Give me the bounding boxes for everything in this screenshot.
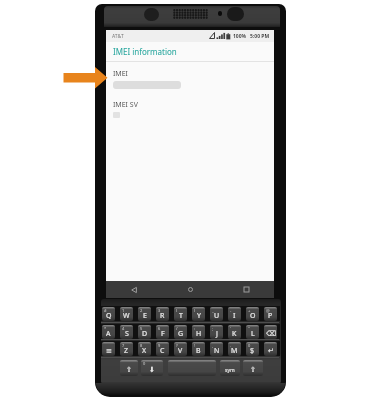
staticText: /	[176, 326, 178, 331]
staticText: IMEI information	[113, 46, 177, 57]
button[interactable]: ⌫	[264, 325, 277, 339]
staticText: 100%	[233, 33, 247, 40]
button[interactable]: Q	[102, 307, 115, 321]
staticText: 8	[140, 343, 143, 348]
button[interactable]: D	[138, 325, 151, 339]
button[interactable]: S	[120, 325, 133, 339]
staticText: @	[266, 308, 270, 313]
staticText: "	[248, 326, 250, 331]
staticText: Y	[197, 311, 201, 321]
staticText: ↵	[268, 347, 274, 355]
staticText: #	[104, 308, 107, 313]
staticText: ;	[212, 326, 214, 331]
staticText: 9	[158, 343, 161, 348]
staticText: +	[248, 308, 251, 313]
staticText: K	[232, 329, 237, 339]
button[interactable]: ⬇	[141, 360, 163, 376]
button[interactable]: J	[210, 325, 223, 339]
button[interactable]: IMEI SV	[106, 97, 274, 123]
button[interactable]: IMEI information	[106, 42, 274, 61]
staticText: 2	[140, 308, 143, 313]
button[interactable]: $	[246, 342, 259, 356]
staticText: G	[178, 329, 184, 339]
button[interactable]: W	[120, 307, 133, 321]
button[interactable]: P	[264, 307, 277, 321]
staticText: F	[161, 329, 165, 339]
staticText: ⇧	[126, 366, 132, 374]
staticText: D	[142, 329, 148, 339]
staticText: U	[214, 311, 220, 321]
staticText: IMEI SV	[113, 100, 138, 110]
button[interactable]: I	[228, 307, 241, 321]
staticText: ,	[212, 343, 214, 348]
button[interactable]: G	[174, 325, 187, 339]
staticText: IMEI	[113, 69, 128, 79]
staticText: 5	[140, 326, 143, 331]
staticText: H	[196, 329, 202, 339]
button[interactable]: Y	[192, 307, 205, 321]
button[interactable]: X	[138, 342, 151, 356]
staticText: E	[143, 311, 147, 321]
button[interactable]: sym	[220, 360, 240, 376]
staticText: ≡	[106, 347, 112, 355]
staticText: '	[230, 326, 231, 331]
staticText: 0	[248, 343, 251, 348]
staticText: $	[250, 346, 255, 356]
button[interactable]: Z	[120, 342, 133, 356]
staticText: ?	[176, 343, 178, 348]
button[interactable]: H	[192, 325, 205, 339]
button[interactable]: C	[156, 342, 169, 356]
staticText: :	[194, 326, 196, 331]
staticText: _	[212, 308, 214, 313]
button[interactable]: N	[210, 342, 223, 356]
staticText: !	[194, 343, 196, 348]
staticText: C	[160, 346, 165, 356]
staticText: 4	[122, 326, 125, 331]
button[interactable]: E	[138, 307, 151, 321]
staticText: 1	[122, 308, 125, 313]
button[interactable]: M	[228, 342, 241, 356]
staticText: A	[106, 329, 111, 339]
staticText: Q	[106, 311, 112, 321]
button[interactable]: Home	[162, 281, 218, 298]
staticText: *	[104, 326, 107, 331]
staticText: Z	[124, 346, 129, 356]
staticText: P	[268, 311, 273, 321]
button[interactable]: T	[174, 307, 187, 321]
staticText: )	[194, 308, 196, 313]
staticText: .	[230, 343, 232, 348]
button[interactable]: L	[246, 325, 259, 339]
staticText: M	[231, 346, 238, 356]
staticText: ⇧	[250, 366, 256, 374]
staticText: 6	[158, 326, 161, 331]
staticText: N	[214, 346, 220, 356]
button[interactable]: ≡	[102, 342, 115, 356]
staticText: X	[142, 346, 147, 356]
staticText: ⬇	[149, 366, 155, 374]
button[interactable]: ⇧	[243, 360, 263, 376]
button[interactable]: B	[192, 342, 205, 356]
button[interactable]: ⇧	[120, 360, 138, 376]
button[interactable]: ↵	[264, 342, 277, 356]
staticText: O	[250, 311, 256, 321]
staticText: 3	[158, 308, 161, 313]
button[interactable]: F	[156, 325, 169, 339]
button[interactable]: V	[174, 342, 187, 356]
button[interactable]: A	[102, 325, 115, 339]
button[interactable]: Back	[106, 281, 162, 298]
button[interactable]: R	[156, 307, 169, 321]
staticText: S	[125, 329, 129, 339]
button[interactable]: O	[246, 307, 259, 321]
staticText: sym	[225, 367, 235, 374]
button[interactable]: IMEI	[106, 66, 274, 94]
staticText: 0	[143, 361, 146, 366]
staticText: 7	[122, 343, 125, 348]
button[interactable]: K	[228, 325, 241, 339]
button[interactable]: U	[210, 307, 223, 321]
button[interactable]: Recent apps	[218, 281, 274, 298]
button[interactable]	[168, 360, 216, 376]
staticText: R	[160, 311, 165, 321]
staticText: L	[251, 329, 255, 339]
staticText: ⌫	[266, 330, 276, 338]
staticText: AT&T	[112, 33, 124, 40]
